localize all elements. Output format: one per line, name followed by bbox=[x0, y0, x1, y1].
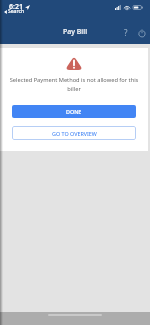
button[interactable]: Help bbox=[119, 26, 132, 39]
staticText: GO TO OVERVIEW bbox=[52, 130, 97, 137]
staticText: Selected Payment Method is not allowed f… bbox=[7, 76, 141, 93]
staticText: Pay Bill bbox=[63, 27, 88, 37]
button[interactable]: Log out bbox=[135, 26, 148, 39]
button[interactable]: DONE bbox=[12, 105, 136, 118]
staticText: DONE bbox=[66, 108, 82, 115]
staticText: 6:21 bbox=[9, 2, 23, 12]
staticText: ? bbox=[124, 27, 128, 38]
button[interactable]: GO TO OVERVIEW bbox=[12, 126, 136, 140]
button[interactable]: Search bbox=[4, 8, 25, 15]
staticText: Search bbox=[8, 8, 25, 15]
